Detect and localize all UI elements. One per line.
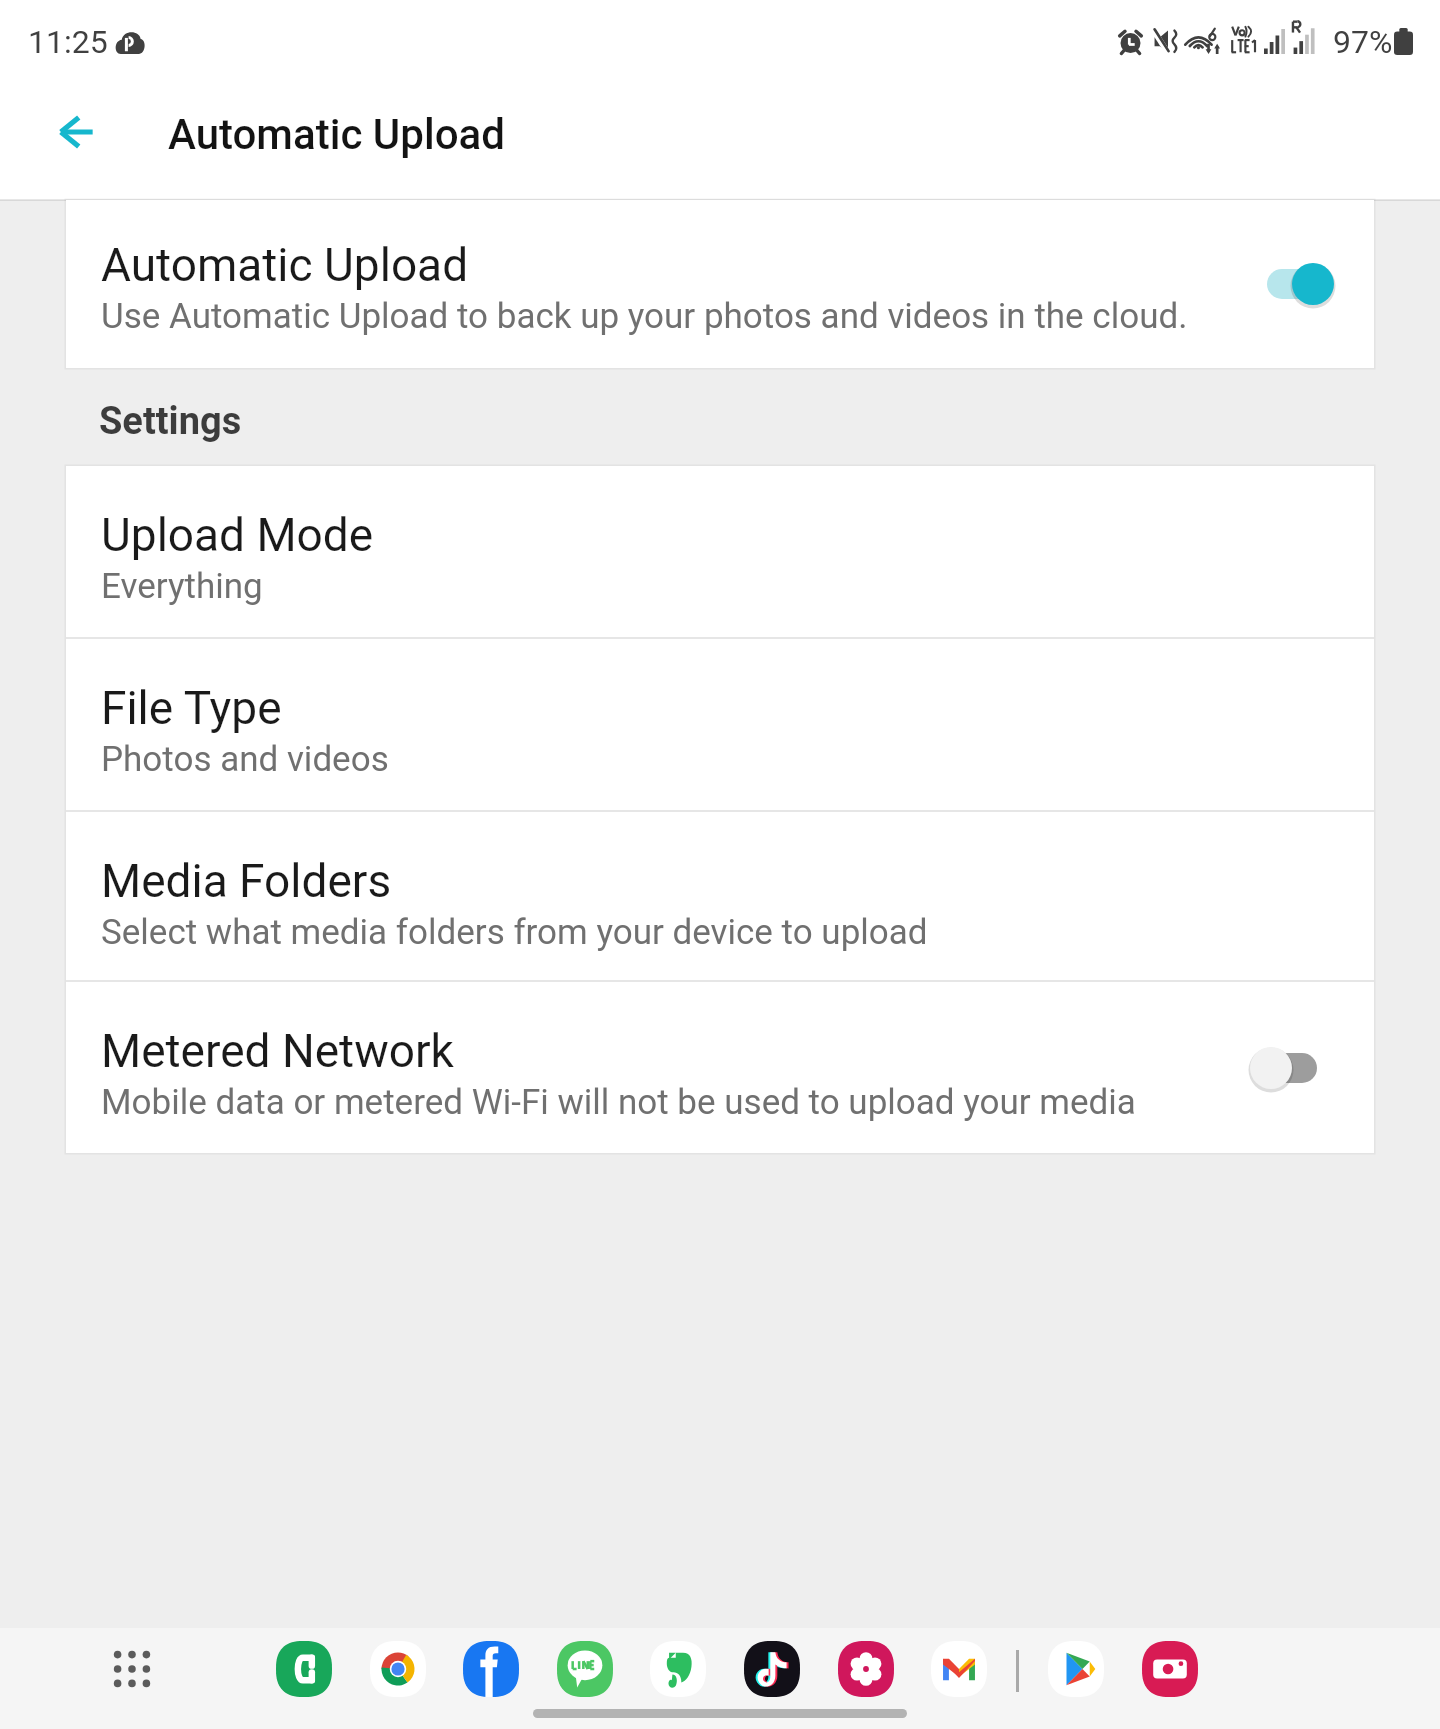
- staticText: 97%: [1333, 23, 1393, 61]
- staticText: Select what media folders from your devi…: [101, 912, 928, 953]
- button[interactable]: Upload Mode: [66, 466, 1374, 637]
- button[interactable]: Media Folders: [66, 812, 1374, 980]
- staticText: Automatic Upload: [101, 238, 469, 292]
- staticText: Use Automatic Upload to back up your pho…: [101, 296, 1188, 337]
- staticText: 11:25: [28, 23, 108, 61]
- staticText: Metered Network: [101, 1024, 454, 1078]
- button[interactable]: Gallery: [838, 1641, 894, 1697]
- button[interactable]: Facebook: [463, 1641, 519, 1697]
- button[interactable]: Enabled: [1254, 253, 1344, 315]
- staticText: Media Folders: [101, 854, 392, 908]
- button[interactable]: File Type: [66, 639, 1374, 810]
- button[interactable]: Play Store: [1048, 1641, 1104, 1697]
- button[interactable]: KakaoTalk: [276, 1641, 332, 1697]
- staticText: Upload Mode: [101, 508, 374, 562]
- button[interactable]: Camera: [1142, 1641, 1198, 1697]
- staticText: Photos and videos: [101, 739, 389, 780]
- button[interactable]: Disabled: [1240, 1037, 1330, 1099]
- button[interactable]: Evernote: [650, 1641, 706, 1697]
- button[interactable]: LINE: [557, 1641, 613, 1697]
- button[interactable]: Automatic Upload: [66, 200, 1374, 368]
- button[interactable]: All apps: [114, 1651, 150, 1687]
- staticText: Automatic Upload: [168, 110, 506, 159]
- staticText: Settings: [99, 399, 242, 444]
- staticText: Everything: [101, 566, 263, 607]
- button[interactable]: Chrome: [370, 1641, 426, 1697]
- button[interactable]: Metered Network: [66, 982, 1374, 1153]
- staticText: Mobile data or metered Wi-Fi will not be…: [101, 1082, 1136, 1123]
- button[interactable]: TikTok: [744, 1641, 800, 1697]
- button[interactable]: Gmail: [931, 1641, 987, 1697]
- button[interactable]: Navigate up: [28, 84, 124, 180]
- staticText: File Type: [101, 681, 282, 735]
